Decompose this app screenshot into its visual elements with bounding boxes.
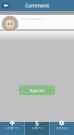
staticText: $ — [35, 119, 39, 127]
button[interactable]: Create PO — [0, 122, 25, 135]
staticText: View PO — [31, 126, 42, 130]
button[interactable]: Settings — [49, 122, 74, 135]
button[interactable]: Back — [0, 0, 12, 11]
button[interactable]: $ — [25, 122, 49, 135]
staticText: Create PO — [5, 126, 19, 130]
staticText: Comment — [25, 2, 49, 9]
staticText: Settings — [56, 126, 67, 130]
staticText: Approve — [29, 88, 44, 93]
staticText: Write a comment… — [22, 17, 46, 20]
button[interactable]: Approve — [19, 85, 55, 95]
